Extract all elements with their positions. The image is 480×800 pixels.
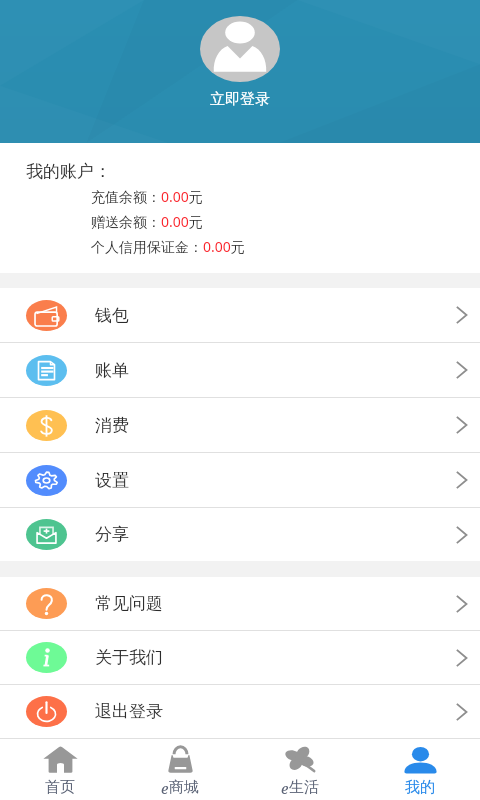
- button[interactable]: Avatar: [200, 16, 280, 82]
- staticText: 退出登录: [95, 701, 163, 722]
- button[interactable]: 常见问题: [0, 577, 480, 630]
- staticText: 赠送余额：0.00元: [91, 212, 203, 231]
- staticText: 生活: [289, 778, 319, 797]
- staticText: 常见问题: [95, 593, 163, 614]
- button[interactable]: 首页: [0, 739, 120, 800]
- staticText: 账单: [95, 360, 129, 381]
- button[interactable]: 账单: [0, 343, 480, 397]
- staticText: 我的账户：: [26, 161, 111, 182]
- staticText: e: [281, 778, 289, 798]
- button[interactable]: 分享: [0, 508, 480, 561]
- staticText: 关于我们: [95, 647, 163, 668]
- staticText: 立即登录: [210, 90, 270, 109]
- staticText: 消费: [95, 415, 129, 436]
- staticText: 分享: [95, 524, 129, 545]
- button[interactable]: 钱包: [0, 288, 480, 342]
- button[interactable]: 关于我们: [0, 631, 480, 684]
- staticText: 我的: [405, 778, 435, 797]
- button[interactable]: e: [120, 739, 240, 800]
- staticText: 商城: [169, 778, 199, 797]
- staticText: 首页: [45, 778, 75, 797]
- button[interactable]: 设置: [0, 453, 480, 507]
- staticText: 设置: [95, 470, 129, 491]
- button[interactable]: 消费: [0, 398, 480, 452]
- button[interactable]: e: [240, 739, 360, 800]
- staticText: 钱包: [95, 305, 129, 326]
- staticText: 个人信用保证金：0.00元: [91, 237, 245, 256]
- button[interactable]: 退出登录: [0, 685, 480, 738]
- staticText: 充值余额：0.00元: [91, 187, 203, 206]
- button[interactable]: 我的: [360, 739, 480, 800]
- staticText: e: [161, 778, 169, 798]
